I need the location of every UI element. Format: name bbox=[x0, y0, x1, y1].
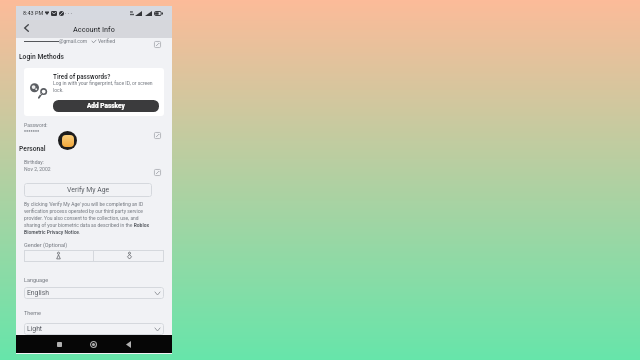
staticText: Add Passkey bbox=[87, 102, 125, 110]
button[interactable]: Female bbox=[24, 250, 93, 262]
staticText: By clicking 'Verify My Age' you will be … bbox=[24, 201, 152, 235]
staticText: Account Info bbox=[73, 25, 115, 34]
button[interactable]: Light bbox=[24, 323, 164, 335]
button[interactable]: @gmail.com bbox=[24, 37, 116, 45]
staticText: Tired of passwords? bbox=[53, 73, 111, 80]
staticText: Log in with your fingerprint, face ID, o… bbox=[53, 80, 153, 93]
staticText: 8:43 PM bbox=[23, 10, 44, 16]
staticText: Personal bbox=[19, 145, 46, 153]
staticText: Password: bbox=[24, 122, 48, 128]
staticText: Verified bbox=[98, 38, 116, 44]
staticText: Birthday: bbox=[24, 159, 44, 165]
staticText: Login Methods bbox=[19, 53, 64, 61]
button[interactable]: Edit bbox=[154, 169, 161, 176]
button[interactable]: Recents bbox=[52, 337, 67, 352]
button[interactable]: Edit bbox=[154, 132, 161, 139]
button[interactable]: Edit bbox=[154, 41, 161, 48]
button[interactable]: Add Passkey bbox=[53, 100, 159, 112]
staticText: Theme bbox=[24, 310, 41, 316]
staticText: English bbox=[27, 289, 49, 297]
staticText: @gmail.com bbox=[59, 38, 88, 44]
staticText: Nov 2, 2002 bbox=[24, 166, 51, 172]
button[interactable]: Back bbox=[121, 337, 136, 352]
button[interactable]: Male bbox=[94, 250, 164, 262]
staticText: Verify My Age bbox=[67, 186, 110, 194]
button[interactable]: Password: bbox=[24, 122, 48, 132]
button[interactable]: English bbox=[24, 287, 164, 299]
staticText: Language bbox=[24, 277, 49, 283]
staticText: Light bbox=[27, 325, 43, 333]
button[interactable]: Back bbox=[19, 22, 33, 36]
button[interactable]: Birthday: bbox=[24, 159, 51, 172]
button[interactable]: Verify My Age bbox=[24, 183, 152, 197]
button[interactable]: Home bbox=[86, 337, 101, 352]
staticText: Gender (Optional) bbox=[24, 242, 68, 248]
